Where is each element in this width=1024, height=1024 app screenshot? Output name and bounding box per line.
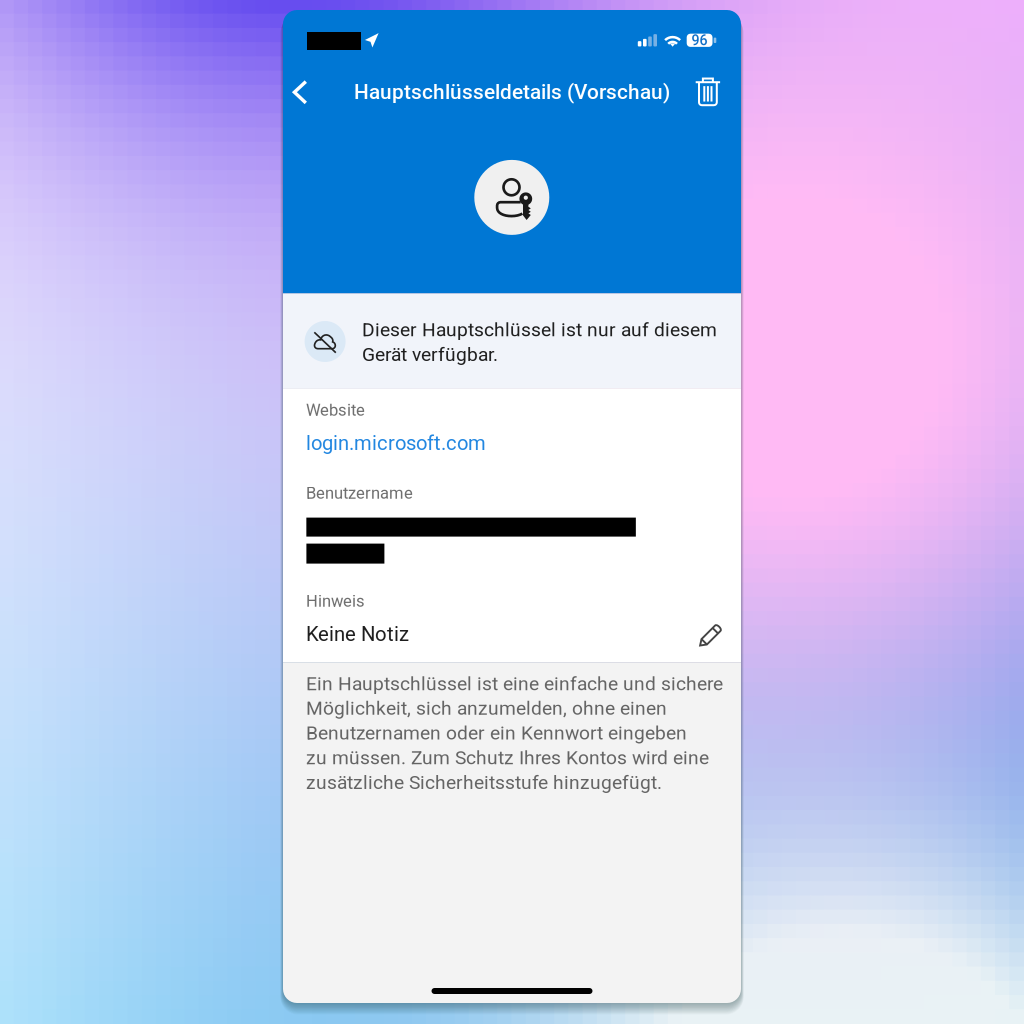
staticText: Keine Notiz (306, 622, 409, 646)
staticText: 96 (692, 32, 708, 49)
staticText: login.microsoft.com (306, 431, 486, 455)
staticText: Benutzername (306, 483, 413, 503)
button[interactable]: Löschen (685, 68, 731, 114)
button[interactable]: Zurück (277, 69, 323, 115)
button[interactable]: login.microsoft.com (306, 431, 606, 455)
staticText: Ein Hauptschlüssel ist eine einfache und… (306, 672, 723, 794)
staticText: Dieser Hauptschlüssel ist nur auf diesem… (362, 318, 717, 366)
staticText: Hauptschlüsseldetails (Vorschau) (354, 80, 670, 104)
staticText: Hinweis (306, 591, 365, 611)
button[interactable]: Notiz bearbeiten (691, 614, 731, 654)
staticText: Website (306, 400, 365, 420)
